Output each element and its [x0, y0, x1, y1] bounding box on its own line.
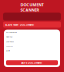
staticText: Page size: [6, 45, 13, 47]
staticText: File format: [6, 36, 12, 38]
button[interactable]: Quality: [6, 49, 58, 52]
button[interactable]: File format: [6, 36, 58, 38]
staticText: Quality: [6, 50, 10, 52]
staticText: SAVE DOCUMENT: [21, 61, 43, 64]
button[interactable]: Color mode: [6, 40, 58, 43]
button[interactable]: Document name: [6, 31, 58, 34]
button[interactable]: Page size: [6, 45, 58, 48]
staticText: Color mode: [6, 41, 14, 43]
staticText: DOCUMENT SCANNER: [20, 2, 43, 13]
button[interactable]: SCAN NEW DOCUMENT: [0, 22, 64, 28]
staticText: SCAN NEW DOCUMENT: [5, 23, 35, 26]
staticText: Document name: [6, 32, 17, 33]
button[interactable]: SAVE DOCUMENT: [6, 60, 58, 65]
